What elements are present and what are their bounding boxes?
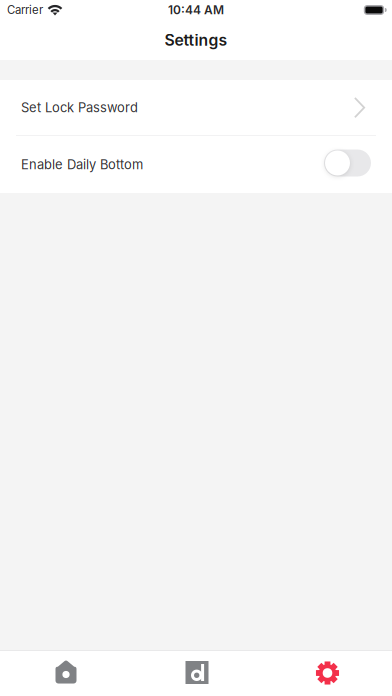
staticText: 10:44 AM — [168, 3, 224, 17]
staticText: Set Lock Password — [21, 100, 138, 115]
button[interactable]: Enable Daily Bottom — [324, 149, 371, 179]
button[interactable]: Set Lock Password — [0, 80, 392, 135]
button[interactable]: Daily — [130, 651, 262, 696]
staticText: Settings — [164, 30, 227, 49]
staticText: Carrier — [7, 3, 43, 17]
button[interactable]: Settings — [262, 651, 392, 696]
staticText: Enable Daily Bottom — [21, 157, 143, 172]
button[interactable]: Home — [0, 651, 130, 696]
